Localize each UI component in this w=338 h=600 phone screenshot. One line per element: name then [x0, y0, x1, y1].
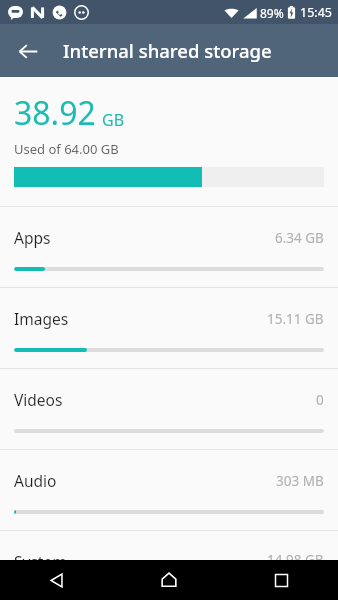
- staticText: 38.92: [14, 91, 96, 135]
- staticText: Audio: [14, 470, 57, 491]
- staticText: 89%: [260, 5, 284, 21]
- staticText: 6.34 GB: [275, 229, 324, 247]
- button[interactable]: Back: [0, 560, 112, 600]
- staticText: Videos: [14, 389, 63, 410]
- button[interactable]: Home: [112, 560, 225, 600]
- staticText: Images: [14, 308, 69, 329]
- button[interactable]: Videos: [0, 369, 338, 449]
- staticText: 15:45: [300, 4, 332, 21]
- button[interactable]: System: [0, 531, 338, 560]
- staticText: Internal shared storage: [63, 38, 272, 63]
- staticText: Used of 64.00 GB: [14, 140, 119, 158]
- button[interactable]: Images: [0, 288, 338, 368]
- button[interactable]: Apps: [0, 207, 338, 287]
- staticText: Apps: [14, 227, 51, 248]
- staticText: 0: [316, 391, 324, 409]
- button[interactable]: Audio: [0, 450, 338, 530]
- button[interactable]: Recents: [225, 560, 338, 600]
- staticText: System: [14, 551, 67, 560]
- button[interactable]: Back: [8, 31, 48, 71]
- staticText: 303 MB: [276, 472, 324, 490]
- staticText: GB: [102, 109, 125, 131]
- staticText: 14.98 GB: [267, 551, 324, 560]
- staticText: 15.11 GB: [267, 310, 324, 328]
